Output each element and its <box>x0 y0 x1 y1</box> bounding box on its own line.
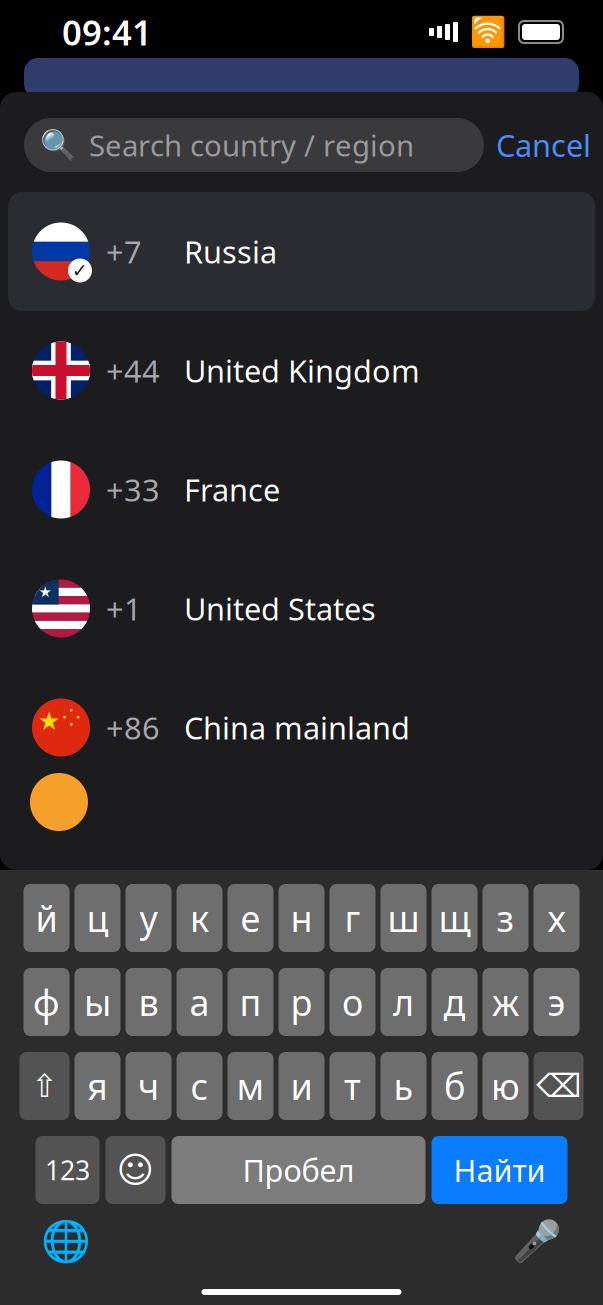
button[interactable]: ✓ <box>8 192 595 311</box>
staticText: р <box>290 978 312 1026</box>
staticText: France <box>184 469 280 510</box>
staticText: ч <box>138 1062 159 1110</box>
button[interactable]: п <box>227 968 273 1036</box>
button[interactable]: Пробел <box>171 1136 425 1204</box>
button[interactable]: ч <box>125 1052 171 1120</box>
staticText: ш <box>387 894 419 942</box>
button[interactable]: и <box>278 1052 324 1120</box>
staticText: л <box>393 978 414 1026</box>
staticText: н <box>290 894 312 942</box>
staticText: ь <box>393 1062 413 1110</box>
staticText: в <box>138 978 158 1026</box>
staticText: я <box>87 1062 108 1110</box>
button[interactable]: т <box>329 1052 375 1120</box>
staticText: к <box>190 894 209 942</box>
button[interactable]: ы <box>74 968 120 1036</box>
staticText: +1 <box>106 588 142 629</box>
button[interactable]: Cancel <box>484 118 603 172</box>
staticText: х <box>547 894 565 942</box>
staticText: з <box>496 894 514 942</box>
staticText: 🎤 <box>512 1218 562 1264</box>
button[interactable]: ж <box>482 968 528 1036</box>
button[interactable]: Delete <box>533 1052 583 1120</box>
staticText: ю <box>491 1062 520 1110</box>
button[interactable]: в <box>125 968 171 1036</box>
staticText: China mainland <box>184 707 410 748</box>
staticText: Найти <box>453 1150 545 1190</box>
staticText: +7 <box>106 231 142 272</box>
staticText: г <box>344 894 360 942</box>
button[interactable]: з <box>482 884 528 952</box>
staticText: ✓ <box>72 260 88 281</box>
staticText: щ <box>438 894 470 942</box>
staticText: +33 <box>106 469 160 510</box>
button[interactable]: ь <box>380 1052 426 1120</box>
button[interactable]: ш <box>380 884 426 952</box>
button[interactable]: я <box>74 1052 120 1120</box>
staticText: Russia <box>184 231 277 272</box>
staticText: ⌫ <box>536 1068 581 1104</box>
button[interactable]: Next keyboard <box>36 1216 96 1266</box>
button[interactable]: л <box>380 968 426 1036</box>
staticText: Search country / region <box>89 125 414 164</box>
staticText: м <box>236 1062 264 1110</box>
staticText: ж <box>492 978 519 1026</box>
staticText: й <box>35 894 57 942</box>
button[interactable]: е <box>227 884 273 952</box>
staticText: ⇧ <box>31 1068 58 1104</box>
button[interactable]: ★ <box>8 549 595 668</box>
staticText: Cancel <box>496 125 591 165</box>
button[interactable]: +33 <box>8 430 595 549</box>
button[interactable]: ★ <box>8 668 595 787</box>
staticText: ★ <box>38 707 61 735</box>
staticText: с <box>190 1062 208 1110</box>
button[interactable]: н <box>278 884 324 952</box>
button[interactable]: а <box>176 968 222 1036</box>
button[interactable]: р <box>278 968 324 1036</box>
button[interactable]: о <box>329 968 375 1036</box>
button[interactable]: д <box>431 968 477 1036</box>
staticText: +44 <box>106 350 160 391</box>
staticText: +86 <box>106 707 160 748</box>
staticText: д <box>443 978 465 1026</box>
staticText: ц <box>86 894 108 942</box>
staticText: United States <box>184 588 376 629</box>
staticText: United Kingdom <box>184 350 420 391</box>
staticText: у <box>139 894 157 942</box>
button[interactable]: Shift <box>19 1052 69 1120</box>
button[interactable]: Dictation <box>507 1216 567 1266</box>
staticText: 09:41 <box>62 9 152 55</box>
button[interactable]: й <box>23 884 69 952</box>
staticText: Пробел <box>242 1150 354 1190</box>
staticText: ф <box>33 978 60 1026</box>
button[interactable]: э <box>533 968 579 1036</box>
staticText: е <box>240 894 260 942</box>
button[interactable]: к <box>176 884 222 952</box>
button[interactable]: м <box>227 1052 273 1120</box>
staticText: и <box>290 1062 312 1110</box>
button[interactable]: б <box>431 1052 477 1120</box>
button[interactable]: ф <box>23 968 69 1036</box>
staticText: ☺ <box>116 1150 154 1190</box>
button[interactable]: у <box>125 884 171 952</box>
button[interactable]: г <box>329 884 375 952</box>
button[interactable]: щ <box>431 884 477 952</box>
staticText: ⁘ <box>62 702 81 732</box>
button[interactable]: х <box>533 884 579 952</box>
button[interactable]: Numbers <box>35 1136 99 1204</box>
button[interactable]: ю <box>482 1052 528 1120</box>
button[interactable]: ц <box>74 884 120 952</box>
staticText: ★ <box>39 584 52 600</box>
button[interactable]: Найти <box>431 1136 567 1204</box>
staticText: б <box>444 1062 465 1110</box>
staticText: т <box>344 1062 361 1110</box>
button[interactable]: +44 <box>8 311 595 430</box>
button[interactable]: 🔍 <box>24 118 484 172</box>
staticText: о <box>342 978 363 1026</box>
button[interactable]: Emoji <box>105 1136 165 1204</box>
staticText: а <box>189 978 209 1026</box>
staticText: п <box>239 978 261 1026</box>
staticText: 🌐 <box>41 1218 91 1264</box>
staticText: э <box>547 978 565 1026</box>
button[interactable]: с <box>176 1052 222 1120</box>
